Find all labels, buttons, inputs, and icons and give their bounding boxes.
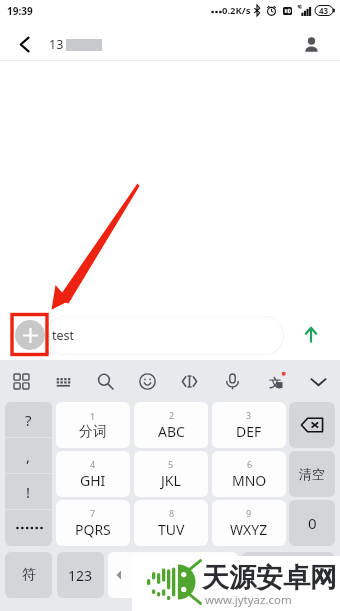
staticText: DEF [236,422,262,441]
button[interactable]: 4 [56,451,130,497]
staticText: MNO [232,471,267,490]
button[interactable]: del [289,402,335,448]
button[interactable]: 123 [57,552,104,598]
button[interactable]: 清空 [289,451,335,497]
button[interactable]: test [45,316,284,355]
staticText: GHI [80,471,106,490]
staticText: 2 [169,409,175,421]
button[interactable]: 6 [212,451,286,497]
staticText: 0 [308,513,317,533]
button[interactable]: 5 [134,451,208,497]
staticText: 43 [319,5,329,16]
button[interactable]: Contact details [294,27,328,61]
button[interactable]: space [108,552,238,598]
button[interactable]: ? [5,402,52,438]
staticText: ! [26,482,31,502]
button[interactable]: enter [242,552,335,598]
button[interactable]: Search [84,360,126,402]
staticText: www.jytyaz.com [205,592,292,608]
staticText: 分词 [79,423,107,441]
staticText: 123 [68,566,93,585]
button[interactable]: 7 [56,500,130,546]
button[interactable]: Panel [0,360,42,402]
staticText: PQRS [75,520,111,539]
button[interactable]: Hide keyboard [297,360,340,402]
button[interactable]: 8 [134,500,208,546]
button[interactable]: Back [7,27,41,61]
button[interactable]: , [5,438,52,474]
staticText: 3 [246,409,252,421]
staticText: 8 [169,507,175,519]
button[interactable]: Emoji [126,360,168,402]
staticText: 符 [22,566,36,584]
staticText: 文 [269,375,281,390]
staticText: test [52,327,75,344]
staticText: 清空 [299,466,325,482]
button[interactable]: 符 [5,552,52,598]
button[interactable]: Add attachment [15,320,45,350]
staticText: WXYZ [230,520,268,539]
button[interactable]: 1 [56,402,130,448]
staticText: 6 [247,458,253,470]
staticText: 天源安卓网 [202,561,337,595]
button[interactable]: Send [296,319,326,349]
staticText: 9 [246,507,252,519]
button[interactable]: ! [5,474,52,510]
staticText: 0.2K/s [222,4,251,17]
button[interactable]: Keyboard [42,360,84,402]
staticText: JKL [161,471,181,490]
button[interactable]: 0 [289,500,335,546]
staticText: ABC [158,422,185,441]
staticText: , [26,446,31,466]
staticText: TUV [158,520,185,539]
button[interactable]: 9 [212,500,286,546]
button[interactable]: More symbols [5,510,52,546]
staticText: 13 [49,36,64,53]
staticText: 1 [90,410,96,422]
button[interactable]: Language [254,360,297,402]
button[interactable]: Clipboard [168,360,211,402]
staticText: 19:39 [7,4,33,18]
button[interactable]: 3 [212,402,286,448]
staticText: ? [25,410,32,430]
staticText: 5 [168,458,174,470]
staticText: 7 [90,507,96,519]
button[interactable]: Voice input [211,360,254,402]
staticText: 4 [90,458,96,470]
button[interactable]: 2 [134,402,208,448]
